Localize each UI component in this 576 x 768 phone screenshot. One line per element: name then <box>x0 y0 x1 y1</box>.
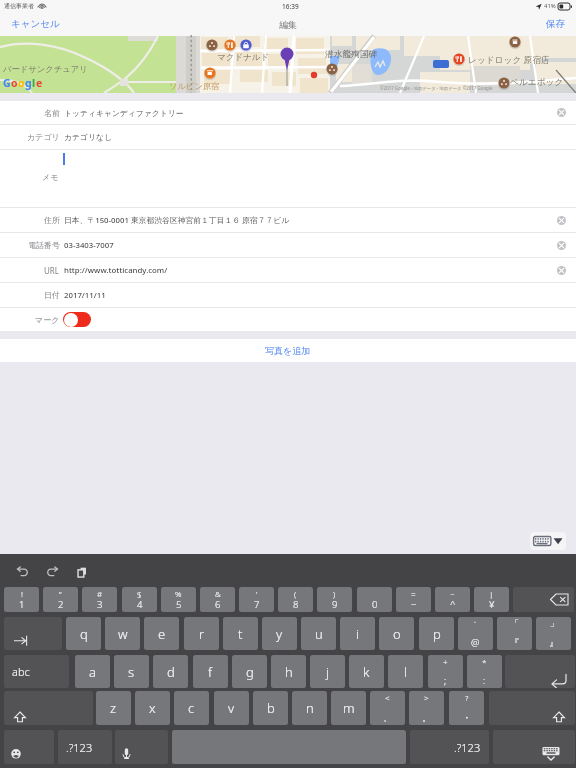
button[interactable]: ` <box>458 617 493 650</box>
button[interactable]: 写真を追加 <box>0 339 576 362</box>
button[interactable]: Clear <box>549 233 573 257</box>
button[interactable]: Clear <box>549 258 573 282</box>
staticText: q <box>80 625 88 643</box>
button[interactable]: enter <box>505 655 575 688</box>
button[interactable]: 0 <box>357 587 392 612</box>
button[interactable]: 」 <box>536 617 571 650</box>
button[interactable]: emoji <box>4 730 54 764</box>
button[interactable]: = <box>396 587 431 612</box>
button[interactable]: ) <box>317 587 352 612</box>
button[interactable]: $ <box>122 587 157 612</box>
button[interactable]: > <box>409 691 444 725</box>
button[interactable]: Clear <box>549 208 573 232</box>
button[interactable]: t <box>223 617 258 650</box>
button[interactable]: g <box>232 655 267 688</box>
staticText: o <box>18 76 25 90</box>
button[interactable]: mic <box>115 730 168 764</box>
button[interactable]: s <box>114 655 149 688</box>
button[interactable]: u <box>301 617 336 650</box>
button[interactable]: backspace <box>513 587 574 612</box>
staticText: a <box>89 663 96 681</box>
button[interactable]: w <box>105 617 140 650</box>
button[interactable]: shiftR <box>489 691 575 725</box>
button[interactable]: # <box>82 587 117 612</box>
button[interactable]: Map <box>0 36 576 93</box>
button[interactable]: ! <box>4 587 39 612</box>
button[interactable]: .?123 <box>410 730 489 764</box>
staticText: abc <box>12 664 30 679</box>
staticText: キャンセル <box>11 18 60 30</box>
button[interactable]: i <box>340 617 375 650</box>
staticText: http://www.totticandy.com/ <box>64 265 168 276</box>
button[interactable]: v <box>214 691 249 725</box>
button[interactable]: abc <box>4 655 69 688</box>
staticText: o <box>393 625 401 643</box>
staticText: 名前 <box>44 108 60 118</box>
button[interactable]: f <box>193 655 228 688</box>
staticText: − <box>411 598 417 611</box>
button[interactable]: 電話番号 <box>0 233 576 257</box>
staticText: 写真を追加 <box>265 345 311 356</box>
button[interactable]: shiftL <box>4 691 93 725</box>
button[interactable]: * <box>467 655 502 688</box>
button[interactable]: メモ <box>0 150 576 207</box>
button[interactable]: % <box>161 587 196 612</box>
button[interactable]: x <box>135 691 170 725</box>
button[interactable]: z <box>96 691 131 725</box>
staticText: 『 <box>510 637 520 649</box>
button[interactable]: 保存 <box>535 14 576 34</box>
button[interactable]: q <box>66 617 101 650</box>
button[interactable]: | <box>474 587 509 612</box>
button[interactable]: kbdown <box>493 730 575 764</box>
staticText: カテゴリ <box>27 132 60 142</box>
button[interactable]: a <box>75 655 110 688</box>
button[interactable]: キャンセル <box>0 14 71 34</box>
button[interactable]: r <box>184 617 219 650</box>
button[interactable]: m <box>331 691 366 725</box>
button[interactable]: p <box>419 617 454 650</box>
button[interactable]: c <box>174 691 209 725</box>
staticText: 6 <box>215 598 221 611</box>
button[interactable]: Mark toggle <box>63 312 91 327</box>
staticText: f <box>208 663 213 681</box>
button[interactable]: k <box>349 655 384 688</box>
button[interactable]: 住所 <box>0 208 576 232</box>
button[interactable]: 名前 <box>0 101 576 124</box>
button[interactable]: Copy <box>73 563 91 581</box>
button[interactable]: .?123 <box>58 730 112 764</box>
button[interactable]: Change keyboard <box>530 532 566 550</box>
button[interactable]: 「 <box>497 617 532 650</box>
button[interactable]: ~ <box>435 587 470 612</box>
button[interactable]: o <box>379 617 414 650</box>
button[interactable]: d <box>153 655 188 688</box>
button[interactable]: < <box>370 691 405 725</box>
staticText: ) <box>333 588 336 599</box>
button[interactable]: ’ <box>239 587 274 612</box>
button[interactable]: Redo <box>44 563 62 581</box>
staticText: g <box>246 663 254 681</box>
button[interactable]: l <box>388 655 423 688</box>
staticText: o <box>11 76 18 90</box>
staticText: 3 <box>97 598 103 611</box>
button[interactable]: マーク <box>0 308 576 331</box>
button[interactable]: Clear <box>550 101 573 124</box>
button[interactable]: y <box>262 617 297 650</box>
button[interactable]: ” <box>43 587 78 612</box>
button[interactable]: ? <box>449 691 484 725</box>
button[interactable]: b <box>253 691 288 725</box>
button[interactable]: 日付 <box>0 283 576 307</box>
button[interactable]: & <box>200 587 235 612</box>
button[interactable]: n <box>292 691 327 725</box>
button[interactable]: + <box>428 655 463 688</box>
button[interactable]: h <box>271 655 306 688</box>
button[interactable]: ( <box>278 587 313 612</box>
button[interactable]: j <box>310 655 345 688</box>
button[interactable]: tab <box>4 617 62 650</box>
button[interactable]: カテゴリ <box>0 125 576 149</box>
button[interactable]: URL <box>0 258 576 282</box>
button[interactable]: Undo <box>13 563 31 581</box>
staticText: 0 <box>372 598 378 611</box>
button[interactable]: e <box>144 617 179 650</box>
staticText: 編集 <box>279 19 297 30</box>
